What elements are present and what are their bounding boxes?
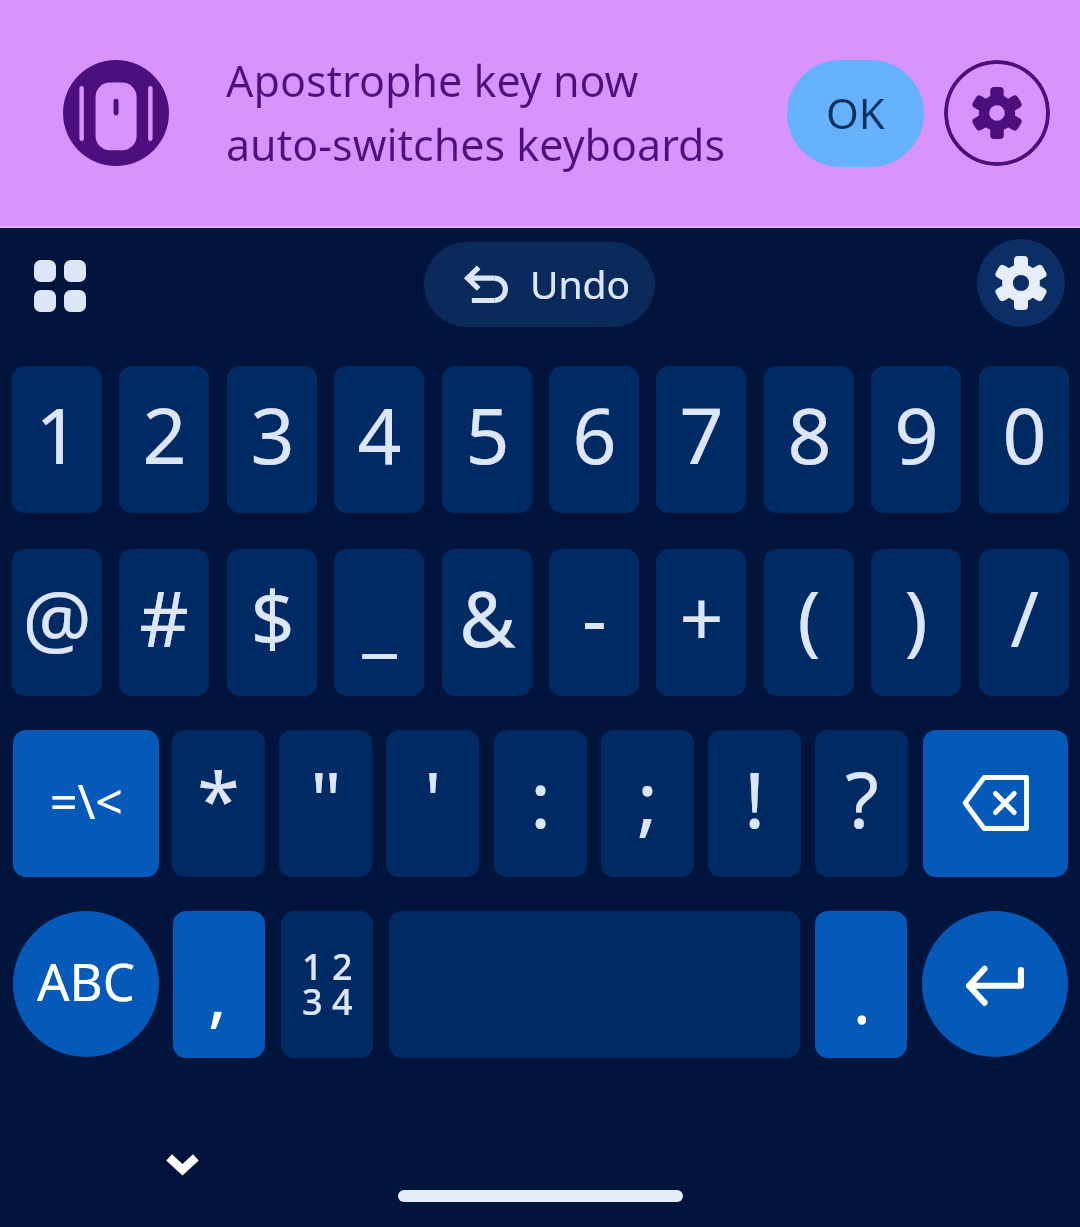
staticText: '	[424, 746, 442, 851]
button[interactable]: +	[656, 549, 746, 696]
button[interactable]: OK	[787, 60, 924, 167]
staticText: &	[459, 565, 516, 670]
staticText: 3 4	[302, 977, 353, 1026]
button[interactable]: !	[708, 730, 801, 877]
staticText: 4	[357, 382, 402, 487]
button[interactable]: -	[549, 549, 639, 696]
staticText: *	[197, 746, 240, 851]
button[interactable]: 9	[871, 366, 961, 513]
staticText: ;	[637, 746, 658, 851]
button[interactable]: @	[12, 549, 102, 696]
button[interactable]: .	[815, 911, 907, 1058]
staticText: +	[679, 565, 724, 670]
button[interactable]: Numbers	[281, 911, 373, 1058]
staticText: 9	[894, 382, 939, 487]
staticText: ?	[845, 746, 879, 851]
staticText: 8	[787, 382, 832, 487]
button[interactable]: 2	[119, 366, 209, 513]
staticText: $	[250, 565, 295, 670]
button[interactable]: 8	[764, 366, 854, 513]
button[interactable]: _	[334, 549, 424, 696]
staticText: -	[582, 565, 607, 670]
staticText: ,	[208, 945, 227, 1040]
button[interactable]: Backspace	[923, 730, 1068, 877]
staticText: Undo	[530, 257, 631, 310]
staticText: ABC	[37, 946, 135, 1015]
staticText: 1	[35, 382, 80, 487]
button[interactable]: )	[871, 549, 961, 696]
staticText: 7	[679, 382, 724, 487]
button[interactable]: 1	[12, 366, 102, 513]
staticText: )	[904, 565, 928, 670]
staticText: Apostrophe key now	[226, 51, 639, 110]
staticText: .	[853, 953, 871, 1043]
button[interactable]: ABC	[13, 911, 159, 1057]
staticText: _	[362, 565, 397, 670]
staticText: #	[139, 565, 189, 670]
button[interactable]: #	[119, 549, 209, 696]
staticText: 2	[142, 382, 187, 487]
staticText: !	[744, 746, 765, 851]
button[interactable]: 7	[656, 366, 746, 513]
staticText: 6	[572, 382, 617, 487]
staticText: 0	[1002, 382, 1047, 487]
staticText: 1 2	[302, 942, 353, 991]
staticText: @	[22, 565, 92, 670]
button[interactable]: *	[172, 730, 265, 877]
button[interactable]: More symbols	[13, 730, 159, 877]
staticText: =\<	[50, 768, 123, 833]
button[interactable]: Undo	[424, 242, 655, 327]
button[interactable]: 6	[549, 366, 639, 513]
button[interactable]: (	[764, 549, 854, 696]
button[interactable]: Settings	[977, 239, 1065, 327]
staticText: :	[530, 746, 551, 851]
staticText: "	[310, 746, 342, 851]
button[interactable]: Settings	[944, 60, 1050, 166]
button[interactable]: /	[979, 549, 1069, 696]
button[interactable]: $	[227, 549, 317, 696]
staticText: auto-switches keyboards	[226, 115, 726, 174]
button[interactable]: Hide keyboard	[140, 1122, 224, 1206]
staticText: 3	[250, 382, 295, 487]
staticText: OK	[826, 84, 885, 141]
button[interactable]: ?	[815, 730, 908, 877]
button[interactable]: 0	[979, 366, 1069, 513]
button[interactable]: 4	[334, 366, 424, 513]
button[interactable]: ;	[601, 730, 694, 877]
staticText: /	[1010, 565, 1039, 670]
button[interactable]: &	[442, 549, 532, 696]
button[interactable]: '	[386, 730, 479, 877]
button[interactable]: Keyboard modes	[17, 243, 102, 328]
button[interactable]: Enter	[922, 911, 1068, 1057]
button[interactable]: 3	[227, 366, 317, 513]
button[interactable]: 5	[442, 366, 532, 513]
staticText: (	[797, 565, 821, 670]
button[interactable]: "	[279, 730, 372, 877]
button[interactable]: :	[494, 730, 587, 877]
staticText: 5	[465, 382, 510, 487]
button[interactable]: ,	[173, 911, 265, 1058]
